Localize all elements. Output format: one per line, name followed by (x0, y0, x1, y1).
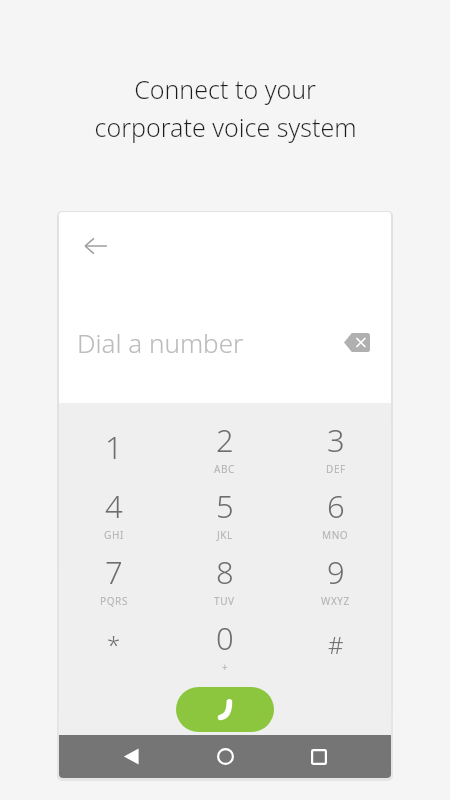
staticText: TUV (214, 594, 235, 608)
staticText: WXYZ (321, 594, 350, 608)
button[interactable]: 8 (169, 549, 280, 615)
staticText: 3 (327, 419, 345, 461)
button[interactable]: 0 (169, 615, 280, 681)
button[interactable]: 1 (59, 417, 169, 483)
staticText: 5 (216, 485, 234, 527)
button[interactable]: 6 (280, 483, 391, 549)
button[interactable]: Back (109, 735, 153, 778)
button[interactable]: Recent apps (297, 735, 341, 778)
staticText: MNO (322, 528, 349, 542)
staticText: Dial a number (77, 325, 244, 360)
staticText: + (222, 660, 229, 674)
staticText: 0 (216, 617, 234, 659)
staticText: # (328, 628, 344, 661)
staticText: corporate voice system (94, 110, 357, 144)
staticText: GHI (104, 528, 124, 542)
staticText: 1 (105, 426, 123, 468)
button[interactable]: 4 (59, 483, 169, 549)
staticText: Connect to your (134, 72, 316, 106)
staticText: 4 (105, 485, 123, 527)
button[interactable]: Backspace (335, 320, 379, 364)
button[interactable]: * (59, 615, 169, 681)
staticText: 8 (216, 551, 234, 593)
button[interactable]: Dial a number (77, 325, 335, 360)
staticText: 7 (105, 551, 123, 593)
button[interactable]: 2 (169, 417, 280, 483)
staticText: PQRS (100, 594, 128, 608)
button[interactable]: 3 (280, 417, 391, 483)
button[interactable]: Back (72, 222, 120, 270)
staticText: * (107, 628, 121, 661)
button[interactable]: Home (203, 735, 247, 778)
button[interactable]: Call (176, 687, 274, 732)
staticText: DEF (326, 462, 346, 476)
staticText: 6 (327, 485, 345, 527)
button[interactable]: 9 (280, 549, 391, 615)
staticText: ABC (214, 462, 236, 476)
staticText: 2 (216, 419, 234, 461)
staticText: JKL (217, 528, 233, 542)
staticText: 9 (327, 551, 345, 593)
button[interactable]: 5 (169, 483, 280, 549)
button[interactable]: # (280, 615, 391, 681)
button[interactable]: 7 (59, 549, 169, 615)
